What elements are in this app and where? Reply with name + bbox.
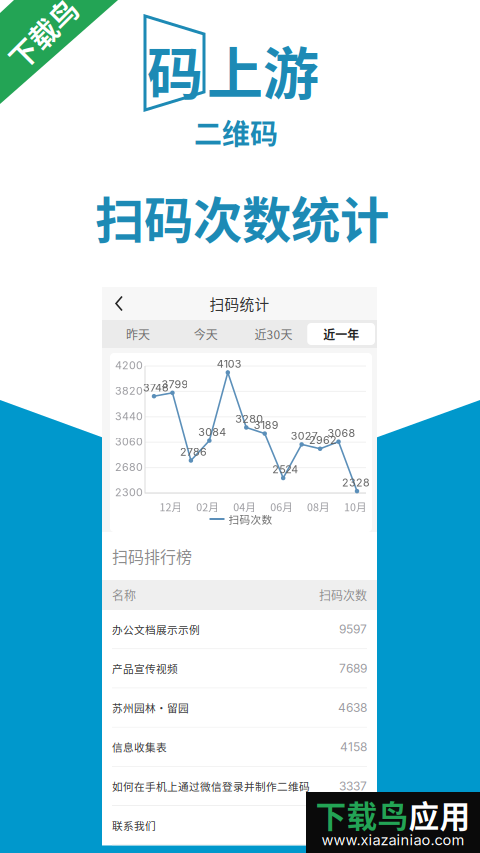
staticText: 联系我们: [112, 817, 156, 833]
staticText: 02月: [196, 499, 219, 514]
staticText: 4158: [340, 740, 367, 754]
staticText: 3068: [327, 427, 355, 440]
staticText: 2786: [180, 445, 207, 458]
staticText: 3820: [115, 384, 143, 397]
staticText: 近一年: [323, 325, 359, 343]
staticText: 昨天: [126, 325, 150, 343]
button[interactable]: 近一年: [307, 323, 375, 345]
staticText: 应用: [408, 792, 470, 837]
staticText: 名称: [112, 586, 136, 604]
button[interactable]: 苏州园林·留园: [102, 688, 377, 728]
staticText: 扫码次数统计: [95, 181, 389, 252]
button[interactable]: 今天: [172, 323, 240, 345]
staticText: 12月: [159, 499, 182, 514]
button[interactable]: 如何在手机上通过微信登录并制作二维码: [102, 767, 377, 806]
button[interactable]: 联系我们: [102, 806, 377, 845]
staticText: 9597: [339, 622, 367, 636]
staticText: 3440: [115, 410, 143, 423]
staticText: 2328: [342, 476, 370, 489]
button[interactable]: 办公文档展示示例: [102, 610, 377, 649]
staticText: 3337: [339, 779, 367, 793]
staticText: 办公文档展示示例: [112, 621, 200, 637]
staticText: 3799: [161, 378, 188, 391]
staticText: 3084: [198, 426, 226, 438]
staticText: 产品宣传视频: [112, 661, 178, 676]
staticText: 2962: [309, 434, 337, 447]
staticText: www.xiazainiao.com: [321, 831, 464, 849]
staticText: 06月: [270, 499, 293, 514]
staticText: 扫码统计: [209, 293, 269, 314]
staticText: 3748: [143, 381, 169, 394]
staticText: 08月: [307, 499, 330, 514]
staticText: 3189: [254, 419, 279, 431]
staticText: 扫码次数: [319, 586, 367, 604]
button[interactable]: 产品宣传视频: [102, 649, 377, 688]
staticText: 2300: [115, 486, 143, 499]
staticText: 04月: [233, 499, 256, 514]
staticText: 3060: [115, 435, 143, 448]
staticText: 信息收集表: [112, 739, 167, 754]
staticText: 2680: [115, 461, 143, 473]
staticText: 近30天: [254, 325, 292, 343]
staticText: 4103: [217, 357, 242, 370]
staticText: 7689: [339, 661, 367, 676]
staticText: 10月: [344, 499, 367, 514]
staticText: 上游: [207, 29, 319, 110]
staticText: 2524: [272, 463, 298, 476]
button[interactable]: 昨天: [104, 323, 172, 345]
staticText: 3027: [291, 429, 318, 442]
button[interactable]: 近30天: [239, 323, 307, 345]
staticText: 4638: [338, 700, 367, 715]
staticText: 苏州园林·留园: [112, 700, 189, 715]
staticText: 码: [147, 29, 203, 110]
staticText: 二维码: [194, 112, 278, 152]
staticText: 下载鸟: [1, 13, 85, 53]
staticText: 扫码排行榜: [112, 544, 192, 568]
staticText: 下载鸟: [315, 792, 408, 837]
staticText: 3280: [235, 412, 263, 425]
button[interactable]: Back: [102, 286, 146, 320]
staticText: 扫码次数: [228, 511, 272, 527]
staticText: 今天: [194, 325, 218, 343]
staticText: 4200: [115, 359, 143, 372]
button[interactable]: 信息收集表: [102, 728, 377, 767]
staticText: 如何在手机上通过微信登录并制作二维码: [112, 778, 310, 794]
